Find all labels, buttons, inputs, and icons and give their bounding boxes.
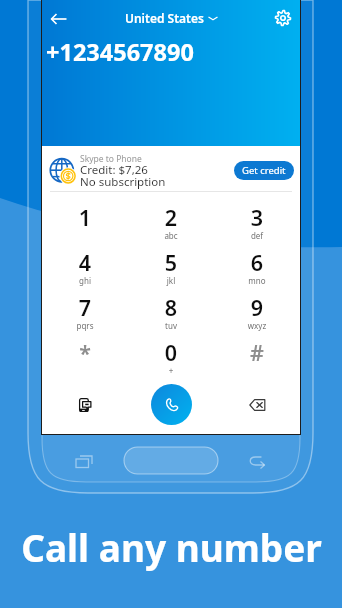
button[interactable]: 5 <box>128 240 214 285</box>
staticText: jkl <box>128 275 214 286</box>
button[interactable]: Back <box>44 4 74 34</box>
staticText: pqrs <box>42 320 128 331</box>
staticText: No subscription <box>80 174 166 190</box>
button[interactable]: 2 <box>128 195 214 240</box>
button[interactable]: * <box>42 330 128 375</box>
staticText: 1 <box>42 203 128 232</box>
button[interactable]: Backspace <box>214 375 300 434</box>
button[interactable]: 0 <box>128 330 214 375</box>
staticText: Get credit <box>242 164 286 177</box>
staticText: 8 <box>128 293 214 322</box>
staticText: United States <box>125 10 204 26</box>
button[interactable]: # <box>214 330 300 375</box>
button[interactable]: United States <box>125 10 218 26</box>
staticText: 2 <box>128 203 214 232</box>
button[interactable]: 9 <box>214 285 300 330</box>
button[interactable]: Settings <box>269 4 297 32</box>
staticText: # <box>214 338 300 367</box>
button[interactable]: 6 <box>214 240 300 285</box>
button[interactable]: 4 <box>42 240 128 285</box>
button[interactable]: 3 <box>214 195 300 240</box>
staticText: 4 <box>42 248 128 277</box>
staticText: 0 <box>128 338 214 367</box>
staticText: +1234567890 <box>46 36 194 68</box>
button[interactable]: Send message <box>42 375 128 434</box>
staticText: mno <box>214 275 300 286</box>
staticText: Call any number <box>21 522 322 572</box>
button[interactable]: 7 <box>42 285 128 330</box>
staticText: Credit: $7,26 <box>80 162 148 178</box>
button[interactable]: Home <box>124 447 218 474</box>
staticText: tuv <box>128 320 214 331</box>
button[interactable]: Get credit <box>234 161 294 180</box>
staticText: * <box>42 338 128 367</box>
staticText: Skype to Phone <box>80 153 142 165</box>
button[interactable]: 1 <box>42 195 128 240</box>
staticText: 6 <box>214 248 300 277</box>
button[interactable]: 8 <box>128 285 214 330</box>
staticText: 9 <box>214 293 300 322</box>
staticText: + <box>128 365 214 376</box>
staticText: 3 <box>214 203 300 232</box>
staticText: 5 <box>128 248 214 277</box>
staticText: 7 <box>42 293 128 322</box>
staticText: ghi <box>42 275 128 286</box>
staticText: wxyz <box>214 320 300 331</box>
button[interactable]: Call <box>151 384 192 425</box>
staticText: abc <box>128 230 214 241</box>
staticText: def <box>214 230 300 241</box>
button[interactable]: Skype to Phone <box>42 146 300 195</box>
